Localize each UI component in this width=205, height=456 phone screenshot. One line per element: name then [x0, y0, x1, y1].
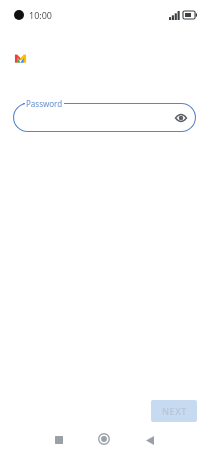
staticText: NEXT [162, 405, 187, 417]
button[interactable]: Home [94, 429, 114, 449]
button[interactable]: Show password [174, 111, 188, 125]
button[interactable]: Password [13, 103, 196, 132]
button[interactable]: Back [141, 431, 159, 449]
button[interactable]: NEXT [151, 400, 197, 422]
button[interactable]: Recent apps [50, 431, 68, 449]
staticText: 10:00 [29, 9, 53, 21]
staticText: Password [26, 98, 63, 109]
